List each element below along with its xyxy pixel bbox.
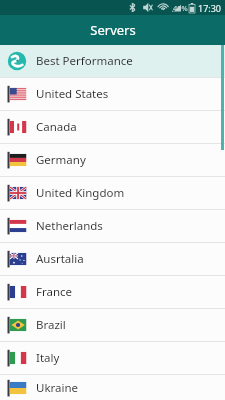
button[interactable]: Ausrtalia [0, 243, 225, 276]
staticText: Italy [36, 350, 60, 366]
staticText: France [36, 284, 73, 300]
button[interactable]: United Kingdom [0, 177, 225, 210]
staticText: United Kingdom [36, 185, 125, 201]
staticText: Brazil [36, 317, 66, 333]
staticText: Canada [36, 119, 77, 135]
button[interactable]: Brazil [0, 309, 225, 342]
staticText: 49% [173, 3, 188, 13]
button[interactable]: Best Performance [0, 45, 225, 78]
staticText: 17:30 [198, 2, 222, 14]
staticText: Netherlands [36, 218, 103, 234]
button[interactable]: France [0, 276, 225, 309]
button[interactable]: United States [0, 78, 225, 111]
button[interactable]: Italy [0, 342, 225, 375]
button[interactable]: Netherlands [0, 210, 225, 243]
staticText: Servers [90, 21, 136, 39]
button[interactable]: Canada [0, 111, 225, 144]
staticText: Germany [36, 152, 86, 168]
staticText: Ausrtalia [36, 251, 84, 267]
button[interactable]: Germany [0, 144, 225, 177]
staticText: Best Performance [36, 53, 133, 69]
button[interactable]: Ukraine [0, 375, 225, 400]
staticText: United States [36, 86, 109, 102]
staticText: Ukraine [36, 380, 79, 396]
